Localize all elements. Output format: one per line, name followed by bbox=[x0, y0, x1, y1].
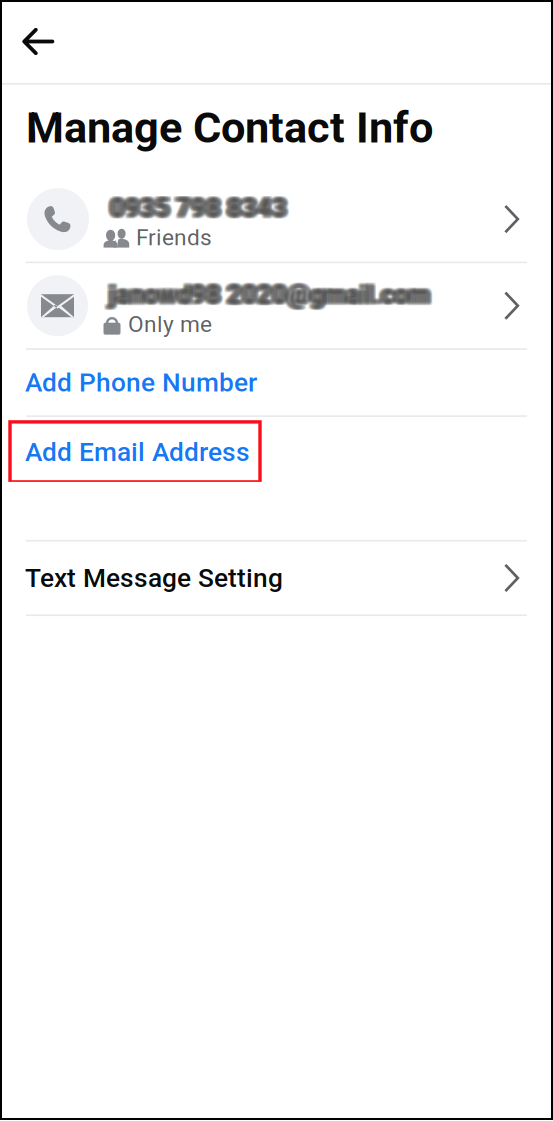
staticText: janowd98 2020@gmail.com bbox=[105, 281, 426, 311]
staticText: janowd98 2020@gmail.com bbox=[111, 280, 432, 310]
staticText: 0935 798 8343 bbox=[108, 192, 285, 222]
staticText: 0935 798 8343 bbox=[107, 193, 284, 222]
staticText: 0935 798 8343 bbox=[113, 194, 290, 224]
staticText: 0935 798 8343 bbox=[106, 193, 283, 223]
staticText: janowd98 2020@gmail.com bbox=[111, 281, 432, 311]
staticText: 0935 798 8343 bbox=[110, 195, 287, 224]
staticText: janowd98 2020@gmail.com bbox=[107, 280, 428, 310]
staticText: janowd98 2020@gmail.com bbox=[108, 278, 429, 308]
staticText: janowd98 2020@gmail.com bbox=[109, 281, 430, 311]
staticText: janowd98 2020@gmail.com bbox=[109, 282, 430, 311]
staticText: janowd98 2020@gmail.com bbox=[110, 281, 431, 311]
staticText: 0935 798 8343 bbox=[106, 195, 283, 224]
staticText: janowd98 2020@gmail.com bbox=[108, 282, 429, 311]
staticText: 0935 798 8343 bbox=[113, 195, 290, 225]
staticText: 0935 798 8343 bbox=[114, 195, 291, 224]
staticText: Add Phone Number bbox=[25, 367, 257, 398]
staticText: 0935 798 8343 bbox=[107, 195, 284, 224]
button[interactable]: Back bbox=[0, 0, 100, 83]
staticText: janowd98 2020@gmail.com bbox=[109, 280, 430, 310]
staticText: janowd98 2020@gmail.com bbox=[111, 279, 432, 309]
staticText: 0935 798 8343 bbox=[112, 194, 289, 224]
staticText: janowd98 2020@gmail.com bbox=[110, 278, 431, 308]
staticText: 0935 798 8343 bbox=[108, 195, 285, 225]
staticText: 0935 798 8343 bbox=[111, 193, 288, 223]
button[interactable]: janowd98 2020@gmail.com bbox=[0, 263, 553, 348]
staticText: janowd98 2020@gmail.com bbox=[113, 279, 434, 309]
staticText: janowd98 2020@gmail.com bbox=[107, 282, 428, 311]
staticText: janowd98 2020@gmail.com bbox=[108, 281, 429, 311]
staticText: 0935 798 8343 bbox=[112, 192, 289, 222]
staticText: 0935 798 8343 bbox=[108, 194, 285, 224]
staticText: janowd98 2020@gmail.com bbox=[106, 282, 427, 311]
button[interactable]: Add Phone Number bbox=[0, 350, 553, 415]
staticText: janowd98 2020@gmail.com bbox=[108, 280, 429, 310]
staticText: janowd98 2020@gmail.com bbox=[113, 279, 434, 308]
staticText: 0935 798 8343 bbox=[114, 192, 291, 222]
staticText: janowd98 2020@gmail.com bbox=[106, 278, 427, 308]
staticText: 0935 798 8343 bbox=[107, 193, 284, 223]
staticText: 0935 798 8343 bbox=[114, 194, 291, 224]
staticText: Friends bbox=[136, 224, 212, 251]
staticText: janowd98 2020@gmail.com bbox=[109, 279, 430, 309]
staticText: 0935 798 8343 bbox=[107, 194, 284, 224]
staticText: 0935 798 8343 bbox=[113, 193, 290, 222]
staticText: janowd98 2020@gmail.com bbox=[108, 280, 429, 310]
staticText: janowd98 2020@gmail.com bbox=[110, 278, 431, 308]
staticText: janowd98 2020@gmail.com bbox=[106, 280, 427, 310]
staticText: janowd98 2020@gmail.com bbox=[113, 282, 434, 311]
staticText: 0935 798 8343 bbox=[112, 195, 289, 225]
staticText: 0935 798 8343 bbox=[112, 193, 289, 223]
button[interactable]: 0935 798 8343 bbox=[0, 177, 553, 262]
staticText: janowd98 2020@gmail.com bbox=[107, 280, 428, 310]
staticText: 0935 798 8343 bbox=[111, 193, 288, 222]
staticText: janowd98 2020@gmail.com bbox=[112, 279, 433, 309]
staticText: 0935 798 8343 bbox=[109, 193, 286, 223]
staticText: janowd98 2020@gmail.com bbox=[108, 279, 429, 308]
staticText: 0935 798 8343 bbox=[111, 195, 288, 225]
staticText: 0935 798 8343 bbox=[109, 195, 286, 224]
staticText: 0935 798 8343 bbox=[112, 192, 289, 222]
staticText: janowd98 2020@gmail.com bbox=[106, 279, 427, 309]
staticText: janowd98 2020@gmail.com bbox=[110, 279, 431, 309]
staticText: janowd98 2020@gmail.com bbox=[112, 279, 433, 308]
staticText: 0935 798 8343 bbox=[107, 192, 284, 222]
button[interactable]: Add Email Address bbox=[0, 417, 260, 482]
staticText: 0935 798 8343 bbox=[112, 195, 289, 225]
staticText: 0935 798 8343 bbox=[107, 191, 284, 221]
staticText: 0935 798 8343 bbox=[109, 193, 286, 222]
staticText: Add Email Address bbox=[25, 436, 250, 467]
staticText: 0935 798 8343 bbox=[112, 193, 289, 222]
staticText: 0935 798 8343 bbox=[111, 194, 288, 224]
staticText: 0935 798 8343 bbox=[112, 193, 289, 223]
staticText: 0935 798 8343 bbox=[109, 195, 286, 225]
staticText: janowd98 2020@gmail.com bbox=[112, 281, 433, 311]
button[interactable]: Text Message Setting bbox=[0, 541, 553, 614]
staticText: 0935 798 8343 bbox=[109, 194, 286, 224]
staticText: janowd98 2020@gmail.com bbox=[107, 281, 428, 311]
staticText: Only me bbox=[128, 311, 212, 337]
staticText: janowd98 2020@gmail.com bbox=[105, 282, 426, 311]
staticText: janowd98 2020@gmail.com bbox=[108, 280, 429, 310]
staticText: 0935 798 8343 bbox=[110, 191, 287, 221]
staticText: 0935 798 8343 bbox=[107, 191, 284, 221]
staticText: 0935 798 8343 bbox=[109, 193, 286, 222]
staticText: 0935 798 8343 bbox=[108, 193, 285, 223]
staticText: janowd98 2020@gmail.com bbox=[111, 278, 432, 308]
staticText: janowd98 2020@gmail.com bbox=[110, 282, 431, 311]
staticText: janowd98 2020@gmail.com bbox=[106, 280, 427, 310]
staticText: janowd98 2020@gmail.com bbox=[111, 280, 432, 310]
staticText: janowd98 2020@gmail.com bbox=[109, 279, 430, 308]
staticText: janowd98 2020@gmail.com bbox=[111, 279, 432, 308]
staticText: 0935 798 8343 bbox=[111, 195, 288, 225]
staticText: 0935 798 8343 bbox=[106, 192, 283, 222]
staticText: Text Message Setting bbox=[25, 563, 283, 593]
staticText: 0935 798 8343 bbox=[109, 191, 286, 221]
staticText: 0935 798 8343 bbox=[107, 194, 284, 224]
staticText: 0935 798 8343 bbox=[110, 193, 287, 222]
staticText: janowd98 2020@gmail.com bbox=[105, 279, 426, 308]
staticText: janowd98 2020@gmail.com bbox=[107, 279, 428, 309]
staticText: janowd98 2020@gmail.com bbox=[108, 279, 429, 308]
staticText: 0935 798 8343 bbox=[109, 194, 286, 224]
staticText: 0935 798 8343 bbox=[106, 194, 283, 224]
